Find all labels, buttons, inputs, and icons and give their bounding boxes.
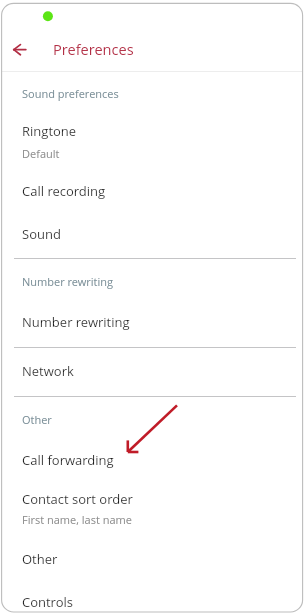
- staticText: Controls: [22, 593, 74, 611]
- button[interactable]: Back: [6, 37, 36, 67]
- staticText: Number rewriting: [22, 274, 114, 289]
- button[interactable]: Preferences: [48, 36, 129, 68]
- staticText: First name, last name: [22, 512, 132, 527]
- staticText: Sound: [22, 225, 61, 243]
- staticText: Ringtone: [22, 122, 77, 140]
- staticText: Number rewriting: [22, 313, 130, 331]
- staticText: Sound preferences: [22, 86, 119, 101]
- staticText: Default: [22, 146, 60, 161]
- staticText: Preferences: [53, 39, 134, 59]
- staticText: Contact sort order: [22, 490, 133, 508]
- staticText: Other: [22, 550, 58, 568]
- staticText: Call recording: [22, 182, 106, 200]
- staticText: Other: [22, 412, 52, 427]
- staticText: Network: [22, 362, 74, 380]
- staticText: Call forwarding: [22, 451, 114, 469]
